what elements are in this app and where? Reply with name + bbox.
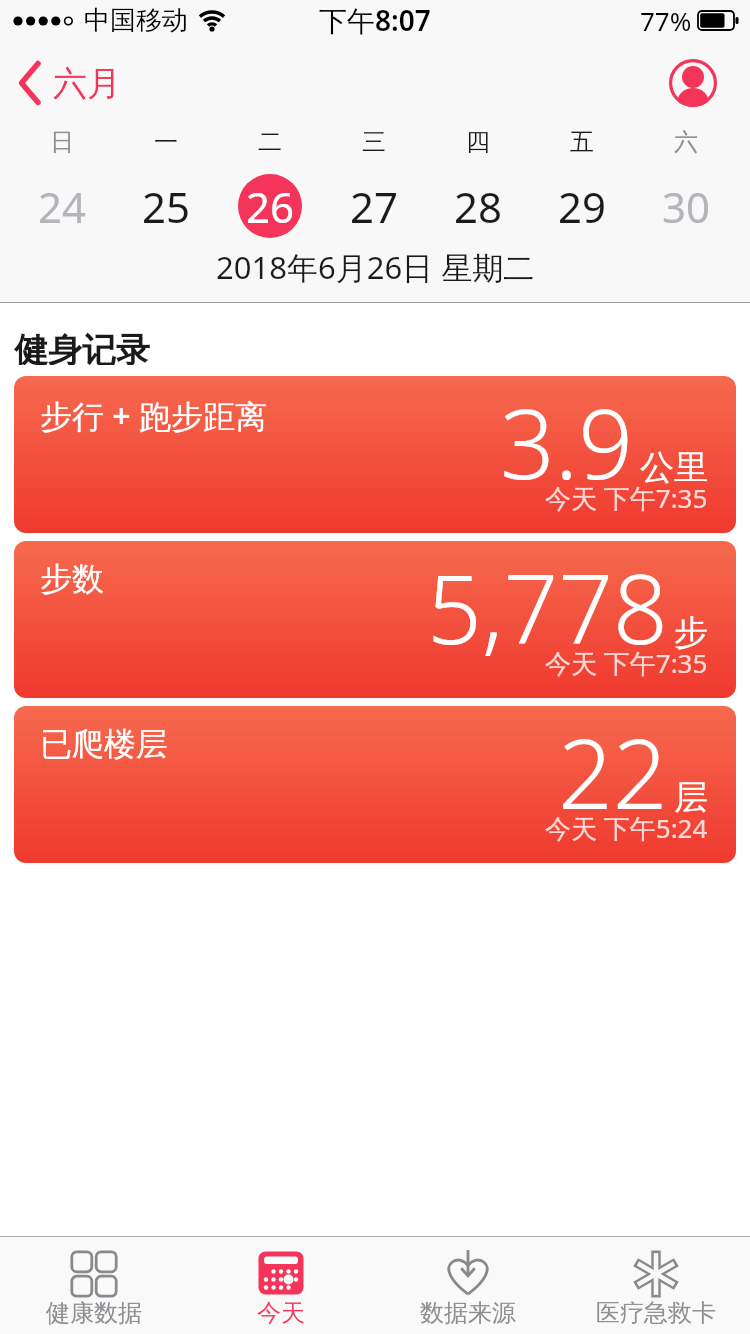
staticText: 5,778 [427, 541, 668, 672]
staticText: 六月 [53, 62, 121, 105]
staticText: 3.9 [500, 376, 634, 507]
staticText: 下午8:07 [319, 1, 431, 39]
staticText: 三 [362, 127, 386, 157]
staticText: 26 [246, 178, 295, 235]
button[interactable]: 数据来源 [374, 1237, 562, 1334]
button[interactable]: 医疗急救卡 [562, 1237, 750, 1334]
staticText: 健康数据 [46, 1298, 142, 1328]
button[interactable] [668, 58, 718, 108]
button[interactable]: 已爬楼层 [14, 706, 736, 863]
staticText: 今天 下午5:24 [545, 810, 708, 846]
staticText: 六 [674, 127, 698, 157]
staticText: 健身记录 [14, 329, 150, 365]
button[interactable]: 步数 [14, 541, 736, 698]
button[interactable]: 27 [322, 174, 426, 238]
staticText: 今天 下午7:35 [545, 480, 708, 516]
staticText: 28 [454, 178, 503, 235]
button[interactable]: 24 [10, 174, 114, 238]
staticText: 2018年6月26日 星期二 [216, 246, 535, 286]
staticText: 77% [640, 3, 692, 38]
staticText: 今天 下午7:35 [545, 645, 708, 681]
staticText: 医疗急救卡 [596, 1298, 716, 1328]
staticText: 步数 [40, 559, 104, 599]
staticText: 数据来源 [420, 1298, 516, 1328]
button[interactable]: 步行 + 跑步距离 [14, 376, 736, 533]
button[interactable]: 25 [114, 174, 218, 238]
staticText: 24 [38, 178, 87, 235]
staticText: 日 [50, 127, 74, 157]
staticText: 一 [154, 127, 178, 157]
button[interactable]: 30 [634, 174, 738, 238]
staticText: 四 [466, 127, 490, 157]
button[interactable]: 健康数据 [0, 1237, 187, 1334]
staticText: 29 [558, 178, 607, 235]
staticText: 中国移动 [84, 4, 188, 37]
button[interactable]: 26 [218, 174, 322, 238]
staticText: 已爬楼层 [40, 724, 168, 764]
button[interactable]: 今天 [187, 1237, 374, 1334]
staticText: 层 [674, 776, 708, 819]
button[interactable]: 六月 [18, 61, 121, 105]
staticText: 公里 [640, 446, 708, 489]
button[interactable]: 29 [530, 174, 634, 238]
staticText: 25 [142, 178, 191, 235]
staticText: 五 [570, 127, 594, 157]
staticText: 步 [674, 611, 708, 654]
staticText: 今天 [257, 1298, 305, 1328]
button[interactable]: 28 [426, 174, 530, 238]
staticText: 二 [258, 127, 282, 157]
staticText: 22 [558, 706, 668, 837]
staticText: 30 [662, 178, 711, 235]
staticText: 27 [350, 178, 399, 235]
staticText: 步行 + 跑步距离 [40, 394, 267, 438]
